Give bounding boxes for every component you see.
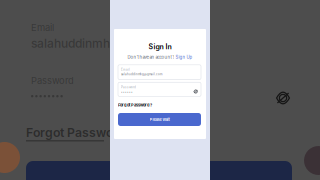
staticText: Don't have an account ? bbox=[127, 54, 174, 60]
button[interactable]: Hide password bbox=[273, 89, 293, 107]
staticText: Please wait bbox=[149, 117, 169, 122]
staticText: Forgot Password? bbox=[26, 125, 133, 140]
staticText: salahuddinmhg@gmail.com bbox=[31, 36, 189, 50]
staticText: Email bbox=[121, 68, 130, 71]
staticText: Forgot Password? bbox=[118, 102, 152, 107]
staticText: salahuddinmhg@gmail.com bbox=[121, 73, 162, 76]
button[interactable]: Sign Up bbox=[176, 54, 193, 60]
staticText: Sign In bbox=[148, 42, 171, 51]
button[interactable]: Forgot Password? bbox=[118, 102, 152, 107]
staticText: Sign Up bbox=[176, 54, 193, 60]
staticText: Email bbox=[31, 22, 54, 33]
staticText: Password bbox=[121, 85, 136, 89]
staticText: Password bbox=[31, 75, 74, 86]
staticText: •••••• bbox=[121, 90, 133, 93]
button[interactable]: Please wait bbox=[118, 113, 201, 126]
